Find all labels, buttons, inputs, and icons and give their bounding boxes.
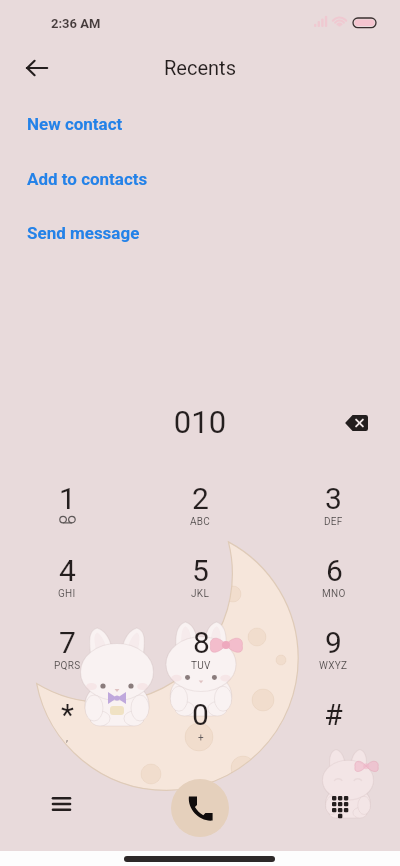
staticText: PQRS: [54, 660, 81, 672]
button[interactable]: Back: [19, 50, 55, 86]
button[interactable]: 8: [134, 619, 267, 691]
staticText: TUV: [191, 660, 211, 672]
staticText: GHI: [58, 588, 76, 600]
staticText: +: [198, 732, 204, 744]
staticText: ,: [66, 732, 69, 744]
button[interactable]: Send message: [0, 206, 400, 260]
staticText: Add to contacts: [27, 169, 148, 189]
button[interactable]: *: [0, 691, 134, 763]
button[interactable]: 3: [267, 475, 400, 547]
staticText: 6: [326, 553, 343, 588]
button[interactable]: 6: [267, 547, 400, 619]
button[interactable]: Add to contacts: [0, 152, 400, 206]
button[interactable]: #: [267, 691, 400, 763]
staticText: 8: [193, 625, 210, 660]
staticText: *: [61, 697, 74, 732]
button[interactable]: 9: [267, 619, 400, 691]
staticText: MNO: [322, 588, 346, 600]
button[interactable]: New contact: [0, 97, 400, 151]
button[interactable]: Keypad: [322, 788, 358, 824]
staticText: 010: [0, 404, 400, 440]
staticText: Recents: [0, 56, 400, 79]
staticText: 1: [59, 481, 76, 516]
staticText: #: [324, 697, 343, 732]
staticText: 3: [325, 481, 342, 516]
staticText: 2: [192, 481, 209, 516]
button[interactable]: Menu: [43, 786, 79, 822]
button[interactable]: 0: [134, 691, 267, 763]
staticText: 2:36 AM: [51, 16, 101, 31]
button[interactable]: 2: [134, 475, 267, 547]
staticText: 7: [59, 625, 76, 660]
staticText: DEF: [324, 516, 343, 528]
staticText: ABC: [190, 516, 211, 528]
button[interactable]: Backspace: [336, 403, 376, 443]
staticText: Send message: [27, 223, 140, 243]
staticText: 5: [192, 553, 209, 588]
button[interactable]: 4: [0, 547, 134, 619]
button[interactable]: 1: [0, 475, 134, 547]
staticText: 9: [325, 625, 342, 660]
staticText: New contact: [27, 114, 123, 134]
staticText: WXYZ: [319, 660, 348, 672]
staticText: 4: [59, 553, 76, 588]
button[interactable]: 5: [134, 547, 267, 619]
button[interactable]: 7: [0, 619, 134, 691]
button[interactable]: Call: [171, 779, 229, 837]
staticText: JKL: [191, 588, 210, 600]
staticText: 0: [192, 697, 209, 732]
